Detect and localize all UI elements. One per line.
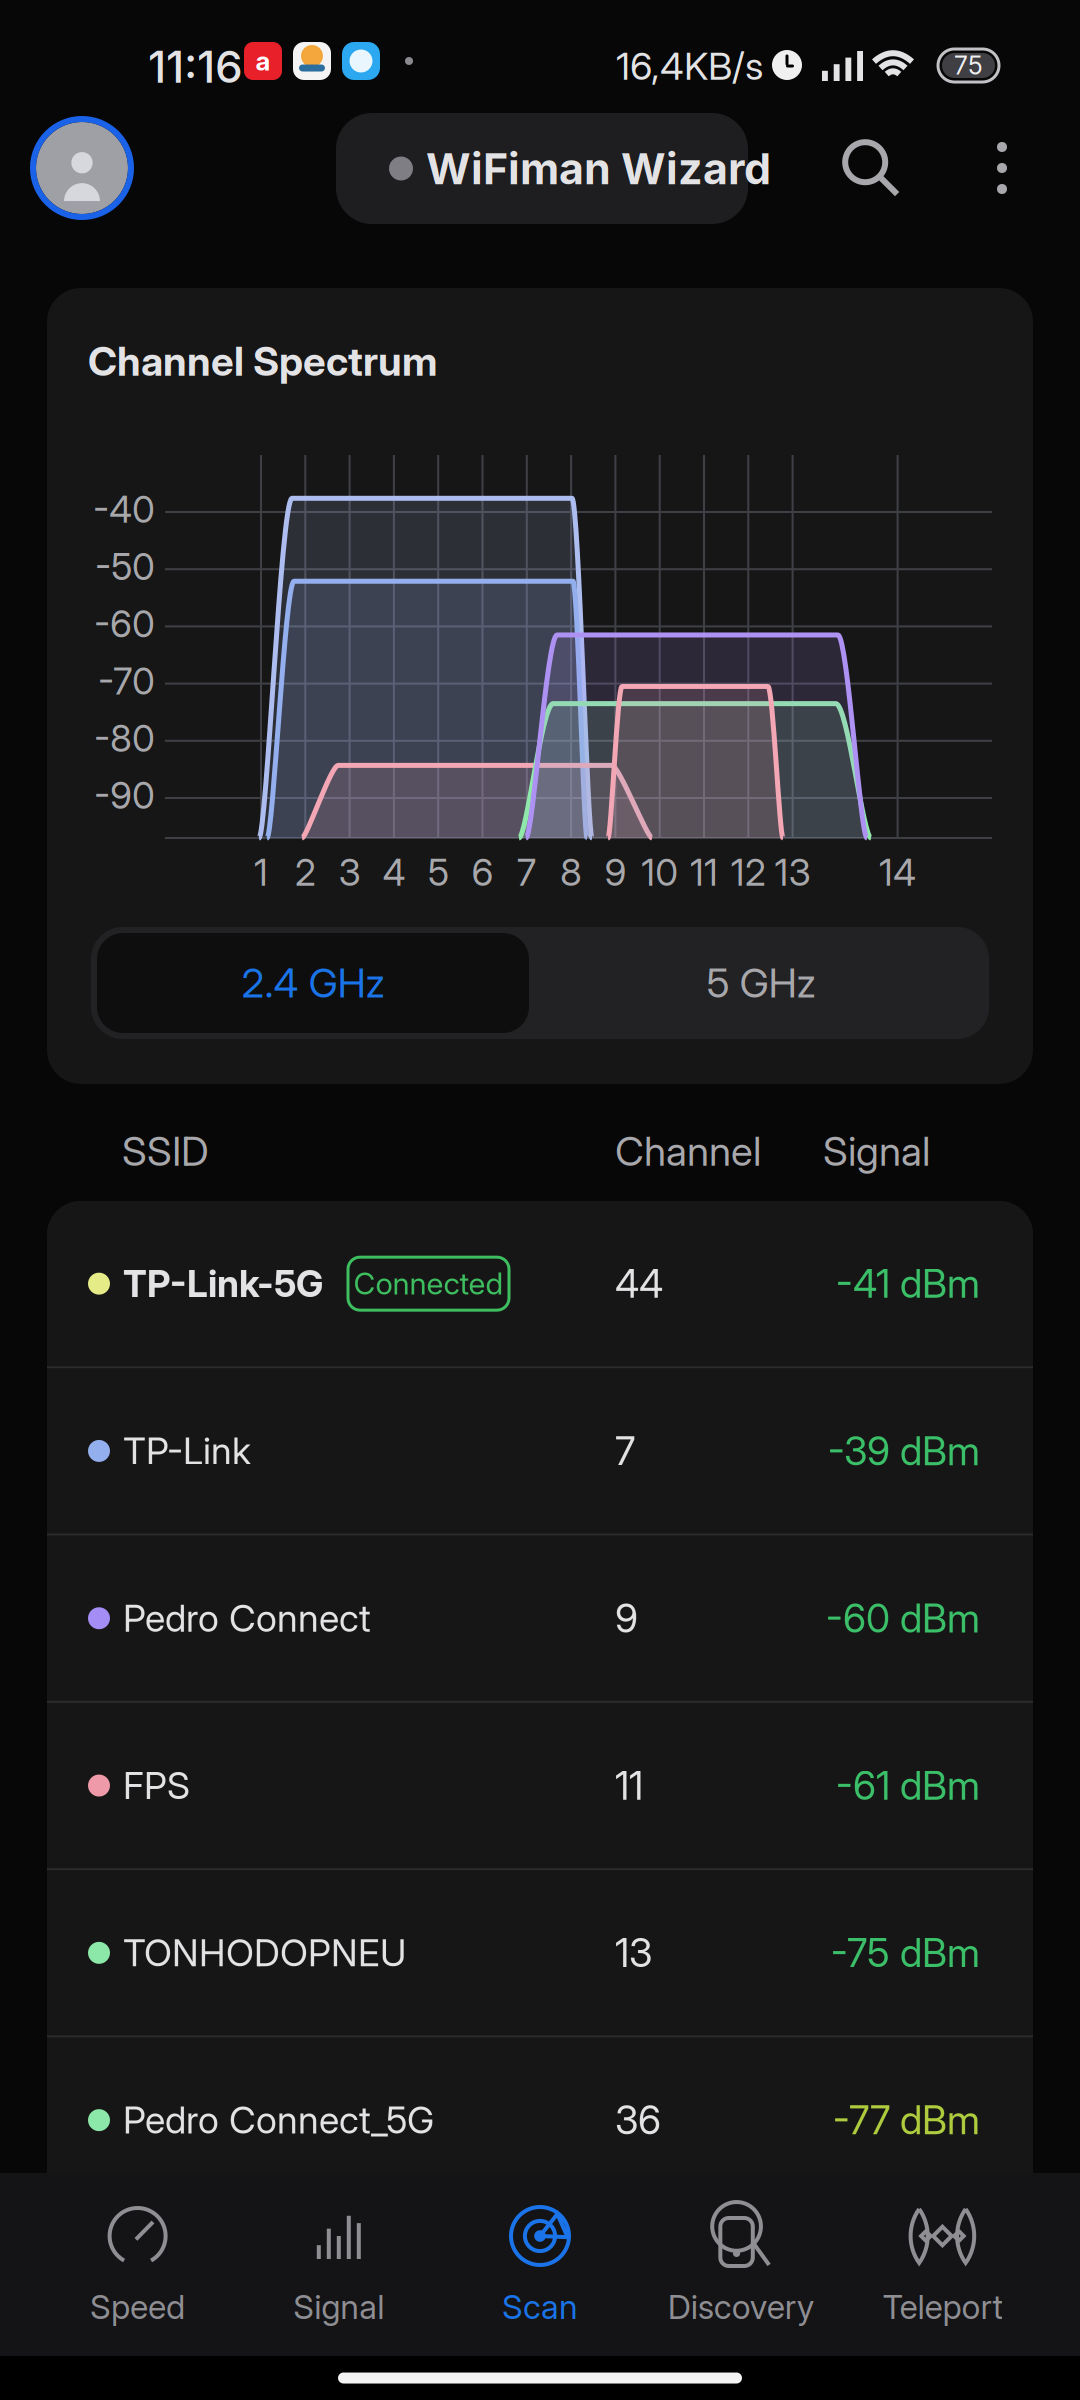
- staticText: 10: [641, 850, 678, 895]
- staticText: -50: [95, 544, 155, 589]
- staticText: 5 GHz: [706, 959, 815, 1007]
- button[interactable]: Account: [30, 116, 134, 220]
- button[interactable]: Pedro Connect: [47, 1536, 1033, 1701]
- staticText: Discovery: [668, 2287, 815, 2327]
- staticText: WiFiman Wizard: [426, 142, 771, 194]
- button[interactable]: Scan: [439, 2173, 641, 2356]
- staticText: -60: [94, 601, 155, 646]
- staticText: a: [255, 45, 270, 77]
- staticText: Pedro Connect: [123, 1596, 371, 1641]
- staticText: -90: [94, 773, 155, 818]
- staticText: 9: [615, 1595, 638, 1642]
- button[interactable]: Discovery: [641, 2173, 842, 2356]
- button[interactable]: TP-Link-5G: [47, 1201, 1033, 1366]
- staticText: 44: [615, 1260, 663, 1307]
- staticText: 2.4 GHz: [241, 959, 384, 1007]
- button[interactable]: Search: [823, 120, 919, 216]
- staticText: 1: [254, 850, 268, 895]
- staticText: Connected: [353, 1265, 503, 1302]
- staticText: Pedro Connect_5G: [123, 2098, 434, 2143]
- staticText: 11:16: [148, 40, 243, 93]
- staticText: 7: [615, 1427, 635, 1475]
- staticText: -60 dBm: [826, 1595, 980, 1642]
- staticText: -70: [98, 659, 155, 703]
- button[interactable]: Pedro Connect_5G: [47, 2037, 1033, 2203]
- button[interactable]: Teleport: [842, 2173, 1043, 2356]
- button[interactable]: 5 GHz: [545, 933, 977, 1033]
- staticText: 6: [471, 850, 493, 895]
- staticText: Channel Spectrum: [88, 337, 437, 385]
- staticText: 13: [615, 1929, 652, 1976]
- staticText: 7: [517, 850, 537, 895]
- staticText: 4: [382, 850, 405, 895]
- button[interactable]: WiFiman Wizard: [336, 113, 748, 224]
- button[interactable]: TP-Link: [47, 1368, 1033, 1534]
- button[interactable]: 2.4 GHz: [97, 933, 529, 1033]
- staticText: Scan: [502, 2287, 578, 2327]
- staticText: Signal: [293, 2287, 384, 2327]
- staticText: 5: [428, 850, 449, 895]
- staticText: 9: [604, 850, 626, 895]
- staticText: 2: [295, 850, 316, 895]
- staticText: SSID: [122, 1127, 209, 1175]
- staticText: TP-Link: [123, 1429, 251, 1473]
- staticText: 11: [690, 850, 718, 895]
- button[interactable]: Speed: [37, 2173, 238, 2356]
- staticText: -75 dBm: [831, 1929, 980, 1976]
- staticText: -40: [93, 487, 155, 532]
- staticText: 3: [339, 850, 361, 895]
- button[interactable]: FPS: [47, 1703, 1033, 1868]
- staticText: -61 dBm: [836, 1762, 980, 1809]
- staticText: Speed: [90, 2287, 185, 2327]
- staticText: -41 dBm: [836, 1260, 980, 1307]
- staticText: Teleport: [882, 2287, 1002, 2327]
- staticText: 8: [560, 850, 582, 895]
- staticText: 13: [775, 850, 811, 895]
- staticText: -39 dBm: [828, 1427, 980, 1475]
- staticText: -80: [94, 716, 155, 761]
- staticText: 36: [615, 2097, 661, 2144]
- staticText: TONHODOPNEU: [123, 1930, 406, 1975]
- staticText: 16,4KB/s: [616, 43, 763, 89]
- staticText: 14: [879, 850, 916, 895]
- staticText: TP-Link-5G: [123, 1261, 323, 1306]
- staticText: 11: [615, 1762, 643, 1809]
- staticText: FPS: [123, 1763, 190, 1808]
- staticText: -77 dBm: [833, 2097, 980, 2144]
- staticText: Channel: [615, 1127, 761, 1175]
- button[interactable]: More options: [962, 120, 1042, 216]
- staticText: 75: [954, 50, 983, 81]
- button[interactable]: Signal: [238, 2173, 439, 2356]
- staticText: 12: [731, 850, 766, 895]
- button[interactable]: TONHODOPNEU: [47, 1870, 1033, 2035]
- staticText: Signal: [823, 1127, 930, 1175]
